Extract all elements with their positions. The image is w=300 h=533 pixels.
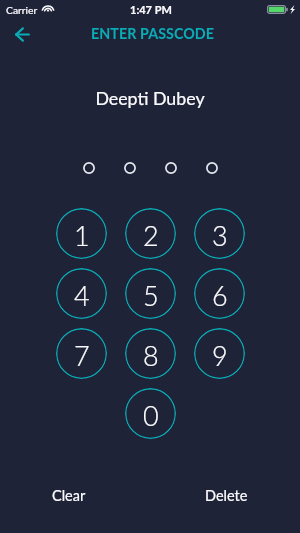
staticText: 6 bbox=[212, 279, 228, 311]
staticText: 9 bbox=[212, 339, 228, 371]
button[interactable]: 9 bbox=[194, 328, 245, 379]
staticText: Carrier bbox=[6, 4, 38, 16]
staticText: 5 bbox=[143, 279, 159, 311]
staticText: 1 bbox=[74, 219, 90, 251]
button[interactable]: 7 bbox=[56, 328, 107, 379]
staticText: Clear bbox=[52, 487, 86, 504]
staticText: 2 bbox=[143, 219, 159, 251]
button[interactable]: 6 bbox=[194, 268, 245, 319]
staticText: 1:47 PM bbox=[130, 3, 172, 16]
button[interactable]: 8 bbox=[125, 328, 176, 379]
button[interactable]: 1 bbox=[56, 208, 107, 259]
button[interactable]: 0 bbox=[125, 388, 176, 439]
staticText: Deepti Dubey bbox=[0, 87, 300, 108]
button[interactable]: 3 bbox=[194, 208, 245, 259]
button[interactable]: 2 bbox=[125, 208, 176, 259]
staticText: Delete bbox=[205, 487, 248, 504]
button[interactable]: Clear bbox=[46, 482, 92, 509]
button[interactable]: 5 bbox=[125, 268, 176, 319]
staticText: ENTER PASSCODE bbox=[91, 25, 215, 42]
staticText: 8 bbox=[143, 339, 159, 371]
button[interactable]: Delete bbox=[199, 482, 254, 509]
staticText: 3 bbox=[212, 219, 228, 251]
staticText: 4 bbox=[74, 279, 90, 311]
staticText: 0 bbox=[143, 399, 159, 431]
button[interactable]: 4 bbox=[56, 268, 107, 319]
staticText: 7 bbox=[74, 339, 90, 371]
button[interactable]: Back bbox=[8, 20, 36, 48]
